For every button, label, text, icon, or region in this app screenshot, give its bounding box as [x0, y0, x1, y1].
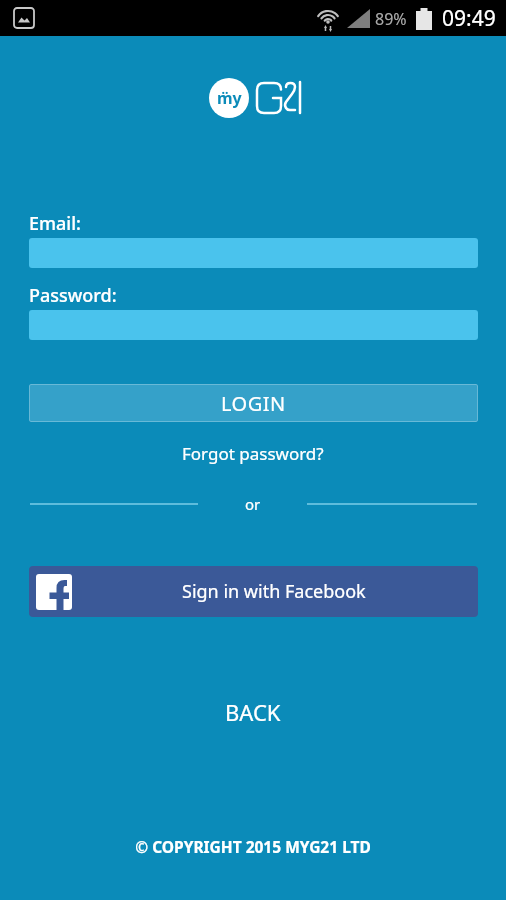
button[interactable]: LOGIN: [29, 384, 478, 422]
staticText: © COPYRIGHT 2015 MYG21 LTD: [0, 836, 506, 857]
button[interactable]: Sign in with Facebook: [29, 566, 478, 617]
staticText: Password:: [29, 283, 117, 308]
staticText: Forgot password?: [182, 442, 324, 465]
staticText: 89%: [375, 8, 407, 30]
button[interactable]: Forgot password?: [0, 440, 506, 466]
staticText: or: [245, 494, 261, 514]
staticText: LOGIN: [221, 390, 286, 417]
staticText: Email:: [29, 211, 81, 236]
button[interactable]: BACK: [0, 696, 506, 728]
staticText: m̈y: [217, 87, 242, 109]
staticText: 09:49: [442, 4, 496, 33]
staticText: Sign in with Facebook: [182, 579, 366, 604]
staticText: BACK: [225, 697, 281, 727]
